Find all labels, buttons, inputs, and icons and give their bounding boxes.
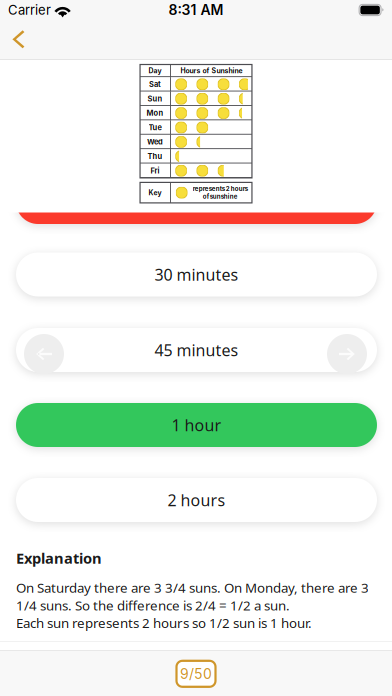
staticText: Sun: [148, 94, 163, 103]
staticText: represents 2 hours: [193, 185, 248, 192]
staticText: of sunshine: [203, 193, 238, 200]
button[interactable]: 45 minutes: [16, 328, 377, 372]
button[interactable]: Back: [0, 20, 40, 59]
staticText: 30 minutes: [154, 264, 238, 285]
staticText: Mon: [147, 109, 164, 118]
staticText: Key: [149, 188, 162, 197]
staticText: 9/50: [180, 665, 212, 682]
button[interactable]: 9/50: [176, 661, 215, 687]
button[interactable]: 1 hour: [16, 403, 377, 447]
button[interactable]: 2 hours: [16, 478, 377, 522]
button[interactable]: Previous question: [24, 334, 64, 374]
button[interactable]: 30 minutes: [16, 252, 377, 296]
staticText: Hours of Sunshine: [180, 67, 242, 75]
staticText: 8:31 AM: [168, 1, 223, 18]
staticText: Carrier: [8, 2, 51, 18]
staticText: Sat: [149, 80, 161, 89]
staticText: Each sun represents 2 hours so 1/2 sun i…: [16, 614, 312, 632]
button[interactable]: Next question: [327, 334, 367, 374]
staticText: On Saturday there are 3 3/4 suns. On Mon…: [16, 579, 369, 614]
staticText: Thu: [148, 152, 163, 161]
staticText: Wed: [147, 137, 163, 146]
staticText: Tue: [149, 123, 162, 132]
staticText: Day: [149, 67, 162, 75]
staticText: 1 hour: [171, 414, 221, 436]
staticText: Fri: [151, 166, 160, 175]
staticText: Explanation: [16, 548, 102, 568]
staticText: 2 hours: [167, 489, 225, 511]
staticText: 45 minutes: [154, 339, 238, 361]
